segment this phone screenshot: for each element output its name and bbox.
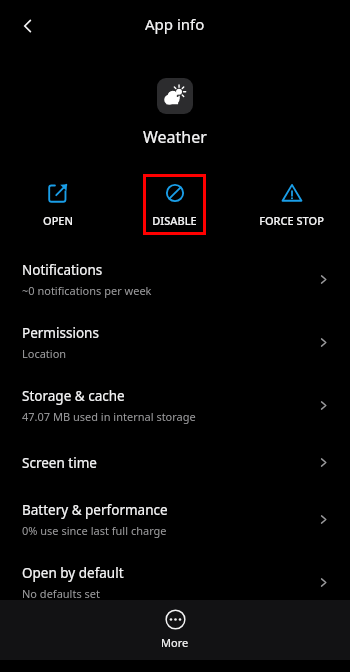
staticText: More bbox=[161, 635, 189, 650]
button[interactable]: Notifications bbox=[0, 248, 350, 311]
staticText: FORCE STOP bbox=[259, 213, 324, 228]
button[interactable]: Back bbox=[10, 8, 46, 44]
button[interactable]: Force stop bbox=[233, 174, 350, 235]
staticText: OPEN bbox=[43, 213, 73, 228]
button[interactable]: Open by default bbox=[0, 551, 350, 614]
staticText: 47.07 MB used in internal storage bbox=[22, 409, 196, 424]
staticText: Storage & cache bbox=[22, 387, 125, 405]
staticText: No defaults set bbox=[22, 586, 100, 601]
staticText: Screen time bbox=[22, 454, 97, 472]
other: Force stop bbox=[281, 182, 303, 204]
staticText: ~0 notifications per week bbox=[22, 283, 152, 298]
other: Disable bbox=[164, 182, 186, 204]
button[interactable]: Disable bbox=[146, 177, 203, 232]
staticText: Battery & performance bbox=[22, 501, 168, 519]
staticText: 0% use since last full charge bbox=[22, 523, 167, 538]
staticText: App info bbox=[145, 14, 205, 34]
button[interactable]: Battery & performance bbox=[0, 488, 350, 551]
staticText: Notifications bbox=[22, 261, 103, 279]
staticText: Location bbox=[22, 346, 67, 361]
staticText: Permissions bbox=[22, 324, 99, 342]
staticText: DISABLE bbox=[152, 213, 197, 228]
staticText: Open by default bbox=[22, 564, 124, 582]
button[interactable]: Open bbox=[0, 174, 116, 235]
button[interactable]: Permissions bbox=[0, 311, 350, 374]
staticText: Weather bbox=[143, 126, 207, 148]
button[interactable]: Storage & cache bbox=[0, 374, 350, 437]
button[interactable]: Screen time bbox=[0, 437, 350, 488]
button[interactable]: More bbox=[0, 600, 350, 660]
other: Open bbox=[47, 182, 69, 204]
